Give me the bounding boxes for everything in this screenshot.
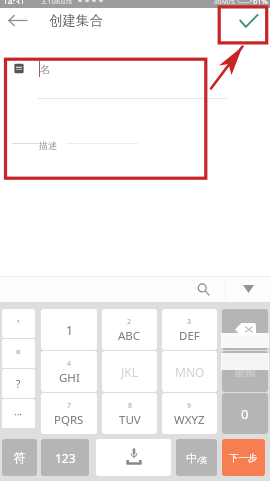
button[interactable]: Back: [0, 8, 34, 33]
button[interactable]: ?: [2, 369, 35, 398]
staticText: 14:31: [3, 0, 25, 4]
staticText: WXYZ: [174, 412, 205, 428]
button[interactable]: Confirm: [228, 8, 268, 33]
staticText: ABC: [118, 328, 141, 344]
staticText: 3.10KB/s: [41, 0, 72, 4]
staticText: 8: [128, 401, 133, 411]
staticText: 0: [241, 405, 249, 423]
staticText: 下一步: [229, 452, 258, 464]
staticText: 中: [186, 451, 197, 465]
button[interactable]: 9: [162, 393, 217, 434]
button[interactable]: 123: [41, 439, 89, 476]
button[interactable]: 7: [41, 393, 97, 434]
staticText: JKL: [121, 364, 138, 380]
staticText: 7: [67, 401, 72, 411]
staticText: 符: [14, 450, 26, 465]
staticText: GHI: [59, 370, 80, 386]
staticText: °: [16, 347, 21, 361]
button[interactable]: Search: [181, 276, 225, 302]
staticText: 1: [66, 322, 73, 338]
staticText: 重输: [234, 365, 256, 379]
button[interactable]: 下一步: [222, 439, 265, 476]
button[interactable]: MNO: [162, 351, 217, 392]
button[interactable]: 1: [41, 309, 97, 350]
staticText: TUV: [119, 412, 141, 428]
staticText: /英: [197, 455, 208, 465]
button[interactable]: °: [2, 339, 35, 368]
button[interactable]: 重输: [222, 351, 268, 392]
staticText: 4: [67, 359, 72, 369]
staticText: 61%: [253, 0, 268, 4]
button[interactable]: 2: [102, 309, 157, 350]
staticText: ': [17, 317, 20, 331]
staticText: MNO: [175, 364, 205, 380]
staticText: 创建集合: [49, 12, 103, 29]
staticText: PQRS: [54, 412, 84, 428]
button[interactable]: 8: [102, 393, 157, 434]
staticText: 名: [40, 63, 51, 76]
button[interactable]: 符: [2, 439, 37, 476]
staticText: 123: [55, 450, 76, 466]
staticText: 9: [187, 401, 192, 411]
staticText: ···: [14, 407, 23, 421]
button[interactable]: ···: [2, 399, 35, 428]
button[interactable]: 4: [41, 351, 97, 392]
staticText: 3: [187, 317, 192, 327]
staticText: DEF: [179, 328, 200, 344]
button[interactable]: [96, 439, 171, 476]
button[interactable]: 3: [162, 309, 217, 350]
button[interactable]: Hide keyboard: [226, 276, 270, 302]
staticText: 描述: [39, 140, 57, 151]
button[interactable]: 0: [222, 393, 268, 434]
button[interactable]: JKL: [102, 351, 157, 392]
button[interactable]: Backspace: [222, 309, 268, 350]
button[interactable]: 中: [176, 439, 217, 476]
button[interactable]: ': [2, 309, 35, 338]
staticText: 36M/s: [213, 0, 235, 4]
staticText: 2: [127, 317, 132, 327]
staticText: ?: [16, 377, 21, 391]
